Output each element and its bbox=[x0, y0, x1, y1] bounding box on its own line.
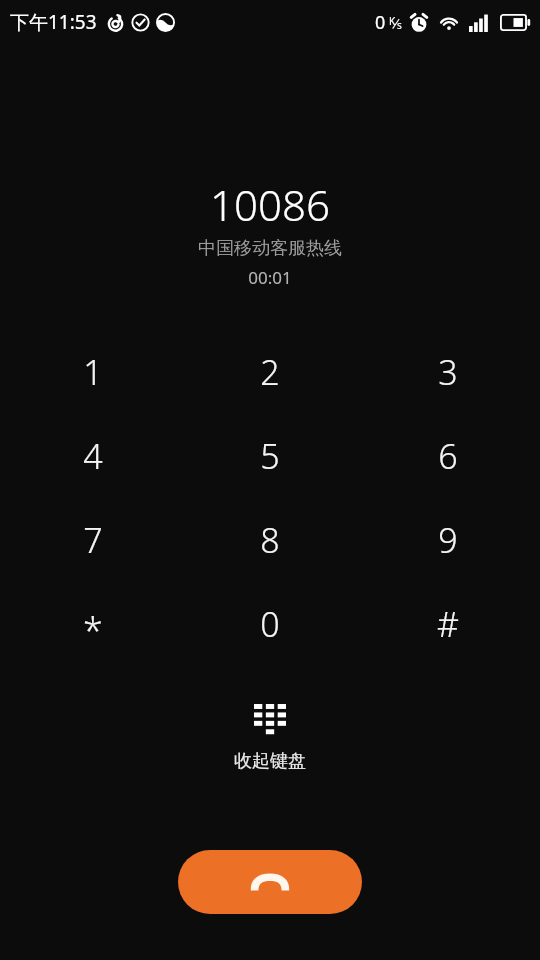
staticText: 4 bbox=[83, 433, 103, 479]
staticText: 3 bbox=[438, 349, 458, 395]
staticText: 00:01 bbox=[248, 266, 292, 289]
button[interactable]: End call bbox=[178, 850, 362, 914]
button[interactable]: 2 bbox=[185, 330, 355, 414]
staticText: 1 bbox=[83, 349, 103, 395]
button[interactable]: * bbox=[8, 582, 178, 666]
staticText: 6 bbox=[438, 433, 458, 479]
staticText: 8 bbox=[260, 517, 280, 563]
button[interactable]: 7 bbox=[8, 498, 178, 582]
button[interactable]: # bbox=[363, 582, 533, 666]
button[interactable]: 4 bbox=[8, 414, 178, 498]
staticText: 收起键盘 bbox=[234, 750, 306, 773]
button[interactable]: 8 bbox=[185, 498, 355, 582]
staticText: 下午11:53 bbox=[10, 9, 97, 35]
button[interactable]: Collapse keypad bbox=[194, 696, 346, 781]
staticText: 0 bbox=[260, 601, 280, 647]
button[interactable]: 9 bbox=[363, 498, 533, 582]
button[interactable]: 5 bbox=[185, 414, 355, 498]
staticText: 9 bbox=[438, 517, 458, 563]
staticText: 10086 bbox=[210, 176, 330, 233]
other: Collapse keypad bbox=[254, 704, 286, 737]
staticText: * bbox=[83, 606, 103, 655]
staticText: 5 bbox=[260, 433, 280, 479]
staticText: 7 bbox=[83, 517, 103, 563]
staticText: s bbox=[397, 18, 402, 32]
staticText: # bbox=[437, 601, 459, 647]
staticText: 2 bbox=[260, 349, 280, 395]
button[interactable]: 0 bbox=[185, 582, 355, 666]
staticText: 0 bbox=[375, 10, 386, 35]
staticText: 中国移动客服热线 bbox=[198, 237, 342, 260]
button[interactable]: 6 bbox=[363, 414, 533, 498]
staticText: K bbox=[389, 14, 396, 28]
button[interactable]: 1 bbox=[8, 330, 178, 414]
button[interactable]: 3 bbox=[363, 330, 533, 414]
